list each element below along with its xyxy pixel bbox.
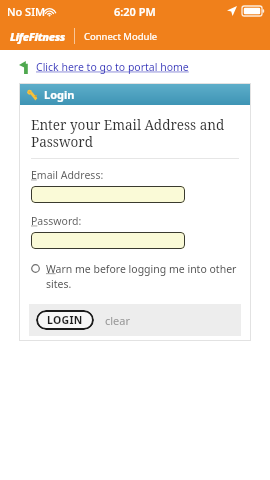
button[interactable]: clear	[105, 313, 131, 328]
staticText: clear	[105, 313, 131, 328]
staticText: 6:20 PM	[114, 4, 156, 19]
staticText: Warn me before logging me into other sit…	[46, 262, 239, 291]
button[interactable]: Warn me before logging me into other sit…	[31, 262, 239, 291]
button[interactable]: Text input field	[31, 186, 185, 203]
staticText: Email Address:	[31, 168, 104, 182]
staticText: Connect Module	[84, 30, 158, 43]
staticText: Login	[44, 87, 75, 102]
staticText: LOGIN	[47, 313, 83, 327]
button[interactable]: Login	[19, 83, 251, 105]
staticText: Click here to go to portal home	[36, 60, 189, 74]
staticText: Password:	[31, 214, 82, 228]
button[interactable]: Text input field	[31, 232, 185, 249]
staticText: Enter your Email Address and Password	[31, 116, 239, 151]
staticText: No SIM	[7, 4, 46, 19]
other: Login	[26, 89, 38, 101]
button[interactable]: Click here to go to portal home	[19, 60, 189, 74]
button[interactable]: LOGIN	[36, 310, 94, 330]
staticText: LifeFitness	[10, 29, 65, 44]
